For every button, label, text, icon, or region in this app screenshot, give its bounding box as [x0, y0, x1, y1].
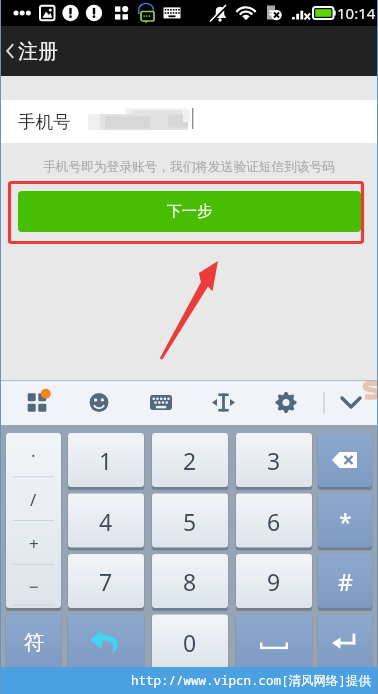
button[interactable]: Keyboard layout — [130, 380, 192, 425]
staticText: / — [30, 488, 37, 511]
button[interactable]: 符 — [6, 615, 61, 669]
button[interactable]: Enter — [318, 615, 372, 669]
button[interactable]: Emoji — [68, 380, 130, 425]
staticText: 1 — [99, 445, 113, 476]
staticText: 3 — [267, 445, 281, 476]
button[interactable]: # — [318, 554, 372, 608]
button[interactable]: 9 — [236, 554, 312, 608]
staticText: 8 — [183, 566, 197, 597]
staticText: http://www.vipcn.com[清风网络]提供 — [131, 672, 372, 689]
staticText: · — [31, 444, 36, 467]
button[interactable]: · — [6, 433, 61, 477]
button[interactable]: Settings — [254, 380, 316, 425]
button[interactable]: Space — [236, 615, 312, 669]
staticText: 7 — [99, 566, 113, 597]
staticText: 10:14 — [337, 3, 376, 23]
staticText: − — [29, 575, 39, 598]
button[interactable]: Back — [0, 26, 70, 76]
button[interactable]: 7 — [68, 554, 144, 608]
button[interactable]: Undo — [68, 615, 144, 669]
button[interactable]: 下一步 — [18, 191, 361, 232]
button[interactable]: 3 — [236, 433, 312, 487]
other: Back — [5, 41, 15, 61]
button[interactable]: 手机号 — [0, 100, 378, 143]
button[interactable]: 0 — [152, 615, 228, 669]
button[interactable]: 6 — [236, 494, 312, 548]
staticText: 下一步 — [167, 202, 212, 221]
button[interactable]: + — [6, 521, 61, 565]
staticText: * — [339, 506, 352, 537]
button[interactable]: Hide keyboard — [330, 380, 378, 425]
staticText: 0 — [183, 627, 197, 658]
button[interactable]: 2 — [152, 433, 228, 487]
button[interactable]: 4 — [68, 494, 144, 548]
staticText: 5 — [183, 506, 197, 537]
staticText: 手机号即为登录账号，我们将发送验证短信到该号码 — [0, 159, 378, 175]
staticText: 注册 — [18, 39, 58, 64]
button[interactable]: 8 — [152, 554, 228, 608]
button[interactable]: Backspace — [318, 433, 372, 487]
staticText: 手机号 — [18, 111, 71, 133]
button[interactable]: / — [6, 477, 61, 521]
button[interactable]: * — [318, 494, 372, 548]
staticText: 9 — [267, 566, 281, 597]
button[interactable]: 1 — [68, 433, 144, 487]
staticText: 6 — [267, 506, 281, 537]
button[interactable]: 5 — [152, 494, 228, 548]
staticText: # — [338, 566, 353, 597]
button[interactable]: Keyboard themes — [0, 380, 68, 425]
button[interactable]: − — [6, 564, 61, 608]
staticText: + — [29, 532, 39, 555]
staticText: 符 — [24, 630, 44, 655]
staticText: 2 — [183, 445, 197, 476]
staticText: 4 — [99, 506, 113, 537]
button[interactable]: Move cursor — [192, 380, 254, 425]
